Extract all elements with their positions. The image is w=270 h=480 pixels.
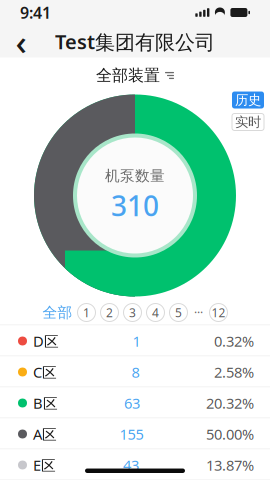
- staticText: 机泵数量: [105, 167, 165, 185]
- staticText: 实时: [235, 114, 261, 130]
- staticText: 5: [175, 304, 182, 320]
- staticText: 43: [123, 455, 139, 475]
- staticText: ···: [194, 304, 203, 320]
- button[interactable]: 全部: [42, 303, 72, 321]
- staticText: 155: [119, 424, 143, 444]
- button[interactable]: D区: [0, 325, 270, 356]
- staticText: 全部: [42, 303, 72, 321]
- staticText: E区: [33, 455, 56, 475]
- button[interactable]: 1: [77, 303, 95, 321]
- staticText: 2: [106, 304, 113, 320]
- button[interactable]: 实时: [232, 113, 264, 130]
- staticText: 3: [129, 304, 136, 320]
- staticText: 1: [132, 331, 140, 351]
- button[interactable]: 4: [146, 303, 164, 321]
- button[interactable]: 5: [169, 303, 187, 321]
- staticText: 63: [124, 393, 140, 413]
- button[interactable]: C区: [0, 356, 270, 387]
- staticText: B区: [33, 393, 58, 413]
- button[interactable]: 3: [123, 303, 141, 321]
- button[interactable]: 12: [209, 303, 227, 321]
- staticText: 20.32%: [206, 393, 254, 413]
- staticText: 2.58%: [214, 362, 254, 382]
- staticText: 9:41: [20, 2, 51, 23]
- button[interactable]: B区: [0, 387, 270, 418]
- button[interactable]: 全部装置: [10, 63, 260, 87]
- staticText: C区: [33, 362, 57, 382]
- staticText: A区: [33, 424, 57, 444]
- staticText: D区: [33, 331, 59, 351]
- button[interactable]: E区: [0, 449, 270, 480]
- staticText: ‹: [15, 18, 26, 64]
- button[interactable]: 历史: [232, 91, 264, 108]
- staticText: 1: [83, 304, 90, 320]
- staticText: 0.32%: [214, 331, 254, 351]
- staticText: 12: [211, 304, 225, 320]
- staticText: 310: [111, 187, 159, 224]
- staticText: 8: [131, 362, 139, 382]
- button[interactable]: A区: [0, 418, 270, 449]
- staticText: Test集团有限公司: [55, 28, 215, 55]
- staticText: 全部装置: [96, 66, 160, 85]
- staticText: 历史: [235, 92, 261, 108]
- staticText: 4: [152, 304, 159, 320]
- button[interactable]: Back: [4, 26, 38, 56]
- staticText: 50.00%: [206, 424, 254, 444]
- button[interactable]: 2: [100, 303, 118, 321]
- staticText: 13.87%: [206, 455, 254, 475]
